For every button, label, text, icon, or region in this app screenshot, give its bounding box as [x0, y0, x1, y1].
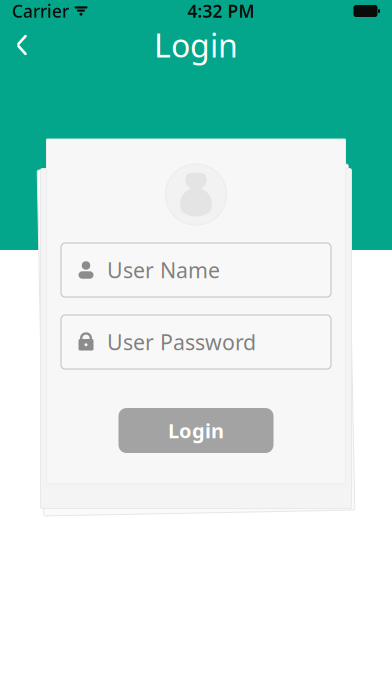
button[interactable]: User Name — [61, 243, 331, 297]
staticText: Login — [154, 24, 238, 66]
button[interactable]: User Password — [61, 315, 331, 369]
button[interactable]: Back — [0, 23, 44, 67]
button[interactable]: Login — [118, 408, 273, 453]
staticText: Carrier — [12, 0, 69, 22]
staticText: Login — [168, 417, 224, 444]
staticText: User Name — [107, 256, 220, 284]
staticText: User Password — [107, 328, 256, 356]
staticText: 4:32 PM — [187, 0, 254, 22]
